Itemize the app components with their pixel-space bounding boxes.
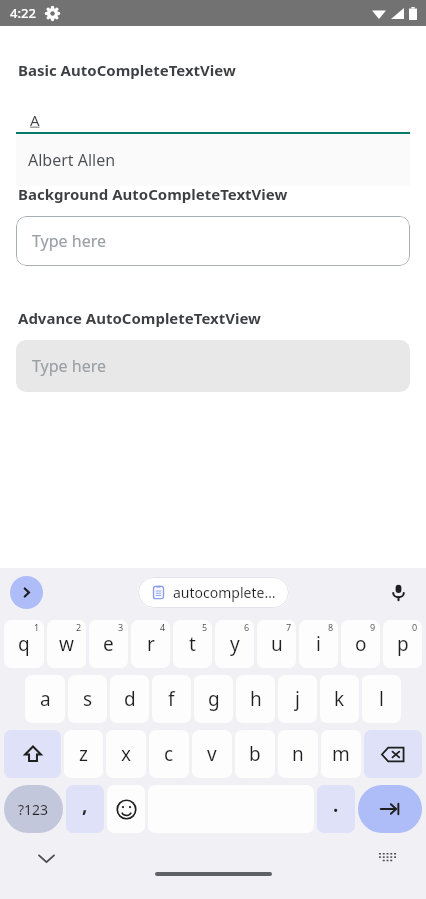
- button[interactable]: f: [152, 675, 191, 723]
- staticText: A: [30, 110, 40, 130]
- staticText: f: [168, 686, 175, 712]
- button[interactable]: Switch keyboard: [374, 845, 400, 871]
- staticText: 4:22: [10, 4, 36, 22]
- staticText: n: [292, 741, 304, 767]
- staticText: s: [83, 686, 93, 712]
- button[interactable]: j: [278, 675, 317, 723]
- staticText: Advance AutoCompleteTextView: [18, 308, 261, 328]
- staticText: y: [230, 631, 240, 657]
- button[interactable]: s: [68, 675, 107, 723]
- staticText: g: [208, 686, 220, 712]
- staticText: ,: [82, 792, 88, 818]
- button[interactable]: o: [341, 620, 380, 668]
- button[interactable]: ,: [66, 785, 104, 833]
- staticText: u: [271, 631, 283, 657]
- button[interactable]: autocomplete…: [138, 577, 289, 608]
- button[interactable]: p: [383, 620, 422, 668]
- staticText: a: [40, 686, 51, 712]
- staticText: z: [79, 741, 88, 767]
- staticText: .: [333, 792, 339, 818]
- staticText: h: [250, 686, 262, 712]
- button[interactable]: w: [47, 620, 86, 668]
- button[interactable]: d: [110, 675, 149, 723]
- staticText: 2: [76, 621, 82, 633]
- button[interactable]: a: [25, 675, 65, 723]
- staticText: Type here: [32, 355, 106, 377]
- button[interactable]: Hide keyboard: [33, 845, 59, 871]
- staticText: m: [332, 741, 350, 767]
- button[interactable]: Albert Allen: [16, 134, 410, 186]
- button[interactable]: ?123: [4, 785, 63, 833]
- button[interactable]: n: [278, 730, 318, 778]
- button[interactable]: .: [317, 785, 355, 833]
- staticText: w: [59, 631, 74, 657]
- staticText: 5: [202, 621, 208, 633]
- staticText: o: [355, 631, 367, 657]
- button[interactable]: g: [194, 675, 233, 723]
- button[interactable]: r: [131, 620, 170, 668]
- staticText: Background AutoCompleteTextView: [18, 184, 288, 204]
- button[interactable]: Emoji: [107, 785, 145, 833]
- button[interactable]: h: [236, 675, 275, 723]
- button[interactable]: c: [149, 730, 189, 778]
- button[interactable]: Type here: [16, 216, 410, 266]
- staticText: 3: [118, 621, 124, 633]
- button[interactable]: Shift: [4, 730, 61, 778]
- button[interactable]: t: [173, 620, 212, 668]
- button[interactable]: A: [0, 104, 426, 136]
- staticText: ?123: [18, 800, 49, 819]
- staticText: e: [103, 631, 114, 657]
- staticText: 6: [244, 621, 250, 633]
- staticText: Albert Allen: [28, 149, 116, 171]
- button[interactable]: l: [362, 675, 401, 723]
- button[interactable]: e: [89, 620, 128, 668]
- button[interactable]: Backspace: [364, 730, 422, 778]
- button[interactable]: z: [64, 730, 103, 778]
- button[interactable]: k: [320, 675, 359, 723]
- staticText: 8: [328, 621, 334, 633]
- button[interactable]: m: [321, 730, 361, 778]
- button[interactable]: i: [299, 620, 338, 668]
- staticText: Basic AutoCompleteTextView: [18, 60, 236, 80]
- staticText: q: [18, 631, 30, 657]
- staticText: k: [334, 686, 345, 712]
- button[interactable]: Voice input: [382, 576, 414, 608]
- staticText: 1: [34, 621, 40, 633]
- staticText: autocomplete…: [173, 583, 276, 602]
- staticText: b: [249, 741, 261, 767]
- staticText: 0: [412, 621, 418, 633]
- button[interactable]: x: [106, 730, 146, 778]
- button[interactable]: b: [235, 730, 275, 778]
- button[interactable]: Expand toolbar: [10, 576, 43, 609]
- staticText: v: [207, 741, 217, 767]
- staticText: t: [189, 631, 196, 657]
- staticText: p: [397, 631, 409, 657]
- staticText: 7: [286, 621, 292, 633]
- button[interactable]: q: [4, 620, 44, 668]
- button[interactable]: v: [192, 730, 232, 778]
- button[interactable]: Type here: [16, 340, 410, 392]
- staticText: x: [121, 741, 132, 767]
- staticText: d: [124, 686, 136, 712]
- staticText: i: [316, 631, 321, 657]
- button[interactable]: u: [257, 620, 296, 668]
- button[interactable]: y: [215, 620, 254, 668]
- button[interactable]: Next: [358, 785, 422, 833]
- staticText: c: [164, 741, 174, 767]
- staticText: 4: [160, 621, 166, 633]
- staticText: r: [147, 631, 155, 657]
- staticText: Type here: [32, 230, 106, 252]
- staticText: 9: [370, 621, 376, 633]
- staticText: j: [295, 686, 300, 712]
- staticText: l: [379, 686, 384, 712]
